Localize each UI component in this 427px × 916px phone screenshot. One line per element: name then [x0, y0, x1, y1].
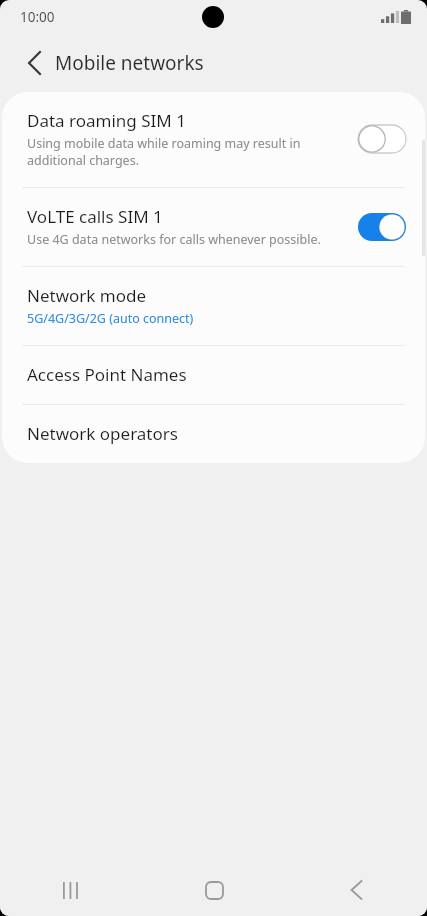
- staticText: Network mode: [27, 284, 147, 307]
- button[interactable]: Access Point Names: [2, 346, 425, 404]
- staticText: 10:00: [20, 8, 55, 26]
- staticText: Access Point Names: [27, 363, 187, 386]
- staticText: VoLTE calls SIM 1: [27, 205, 163, 228]
- staticText: 5G/4G/3G/2G (auto connect): [27, 310, 194, 327]
- staticText: Using mobile data while roaming may resu…: [27, 135, 301, 152]
- staticText: additional charges.: [27, 152, 139, 169]
- button[interactable]: Toggle off: [357, 123, 407, 155]
- button[interactable]: Data roaming SIM 1: [2, 92, 425, 187]
- staticText: Mobile networks: [55, 50, 204, 76]
- button[interactable]: Back: [12, 41, 56, 85]
- button[interactable]: Network operators: [2, 405, 425, 463]
- button[interactable]: Home: [143, 864, 285, 916]
- button[interactable]: VoLTE calls SIM 1: [2, 188, 425, 266]
- button[interactable]: Back: [285, 864, 427, 916]
- staticText: Use 4G data networks for calls whenever …: [27, 231, 321, 248]
- staticText: Data roaming SIM 1: [27, 109, 186, 132]
- button[interactable]: Toggle on: [357, 211, 407, 243]
- button[interactable]: Network mode: [2, 267, 425, 345]
- staticText: Network operators: [27, 422, 178, 445]
- button[interactable]: Recent apps: [0, 864, 143, 916]
